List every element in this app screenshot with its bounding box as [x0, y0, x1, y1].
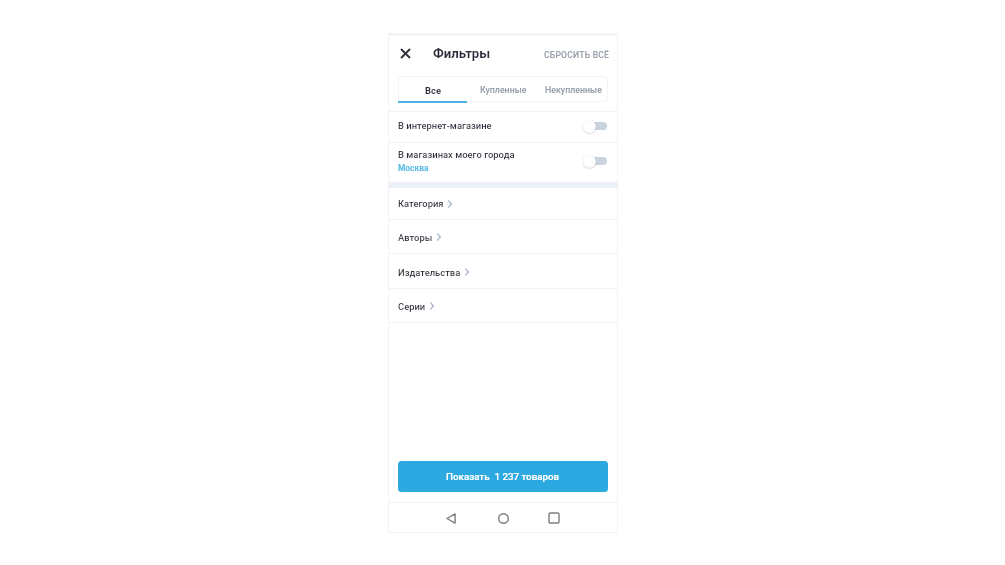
button[interactable]: СБРОСИТЬ ВСЁ — [533, 45, 610, 65]
staticText: Авторы — [398, 232, 433, 243]
staticText: СБРОСИТЬ ВСЁ — [544, 50, 610, 60]
staticText: Все — [425, 85, 441, 96]
staticText: В магазинах моего города — [398, 149, 515, 160]
button[interactable]: Home — [491, 506, 515, 530]
staticText: В интернет-магазине — [398, 120, 492, 131]
button[interactable]: Некупленные — [538, 76, 608, 102]
staticText: Некупленные — [545, 85, 602, 95]
button[interactable]: Back — [439, 506, 463, 530]
staticText: Москва — [398, 163, 429, 173]
staticText: Фильтры — [433, 46, 491, 61]
button[interactable]: Recents — [542, 506, 566, 530]
staticText: Категория — [398, 198, 444, 209]
button[interactable]: Категория — [388, 187, 618, 220]
button[interactable]: Авторы — [388, 220, 618, 254]
button[interactable]: Close — [393, 41, 417, 65]
button[interactable]: Купленные — [468, 76, 538, 102]
staticText: Издательства — [398, 267, 461, 278]
staticText: Серии — [398, 301, 426, 312]
button[interactable]: Показать 1 237 товаров — [398, 461, 608, 492]
button[interactable]: Издательства — [388, 255, 618, 289]
button[interactable]: В магазинах моего города — [388, 141, 618, 180]
button[interactable]: Серии — [388, 289, 618, 323]
button[interactable]: В интернет-магазине — [388, 110, 618, 141]
staticText: Показать 1 237 товаров — [446, 471, 560, 482]
button[interactable]: Все — [398, 76, 468, 102]
staticText: Купленные — [480, 85, 527, 95]
